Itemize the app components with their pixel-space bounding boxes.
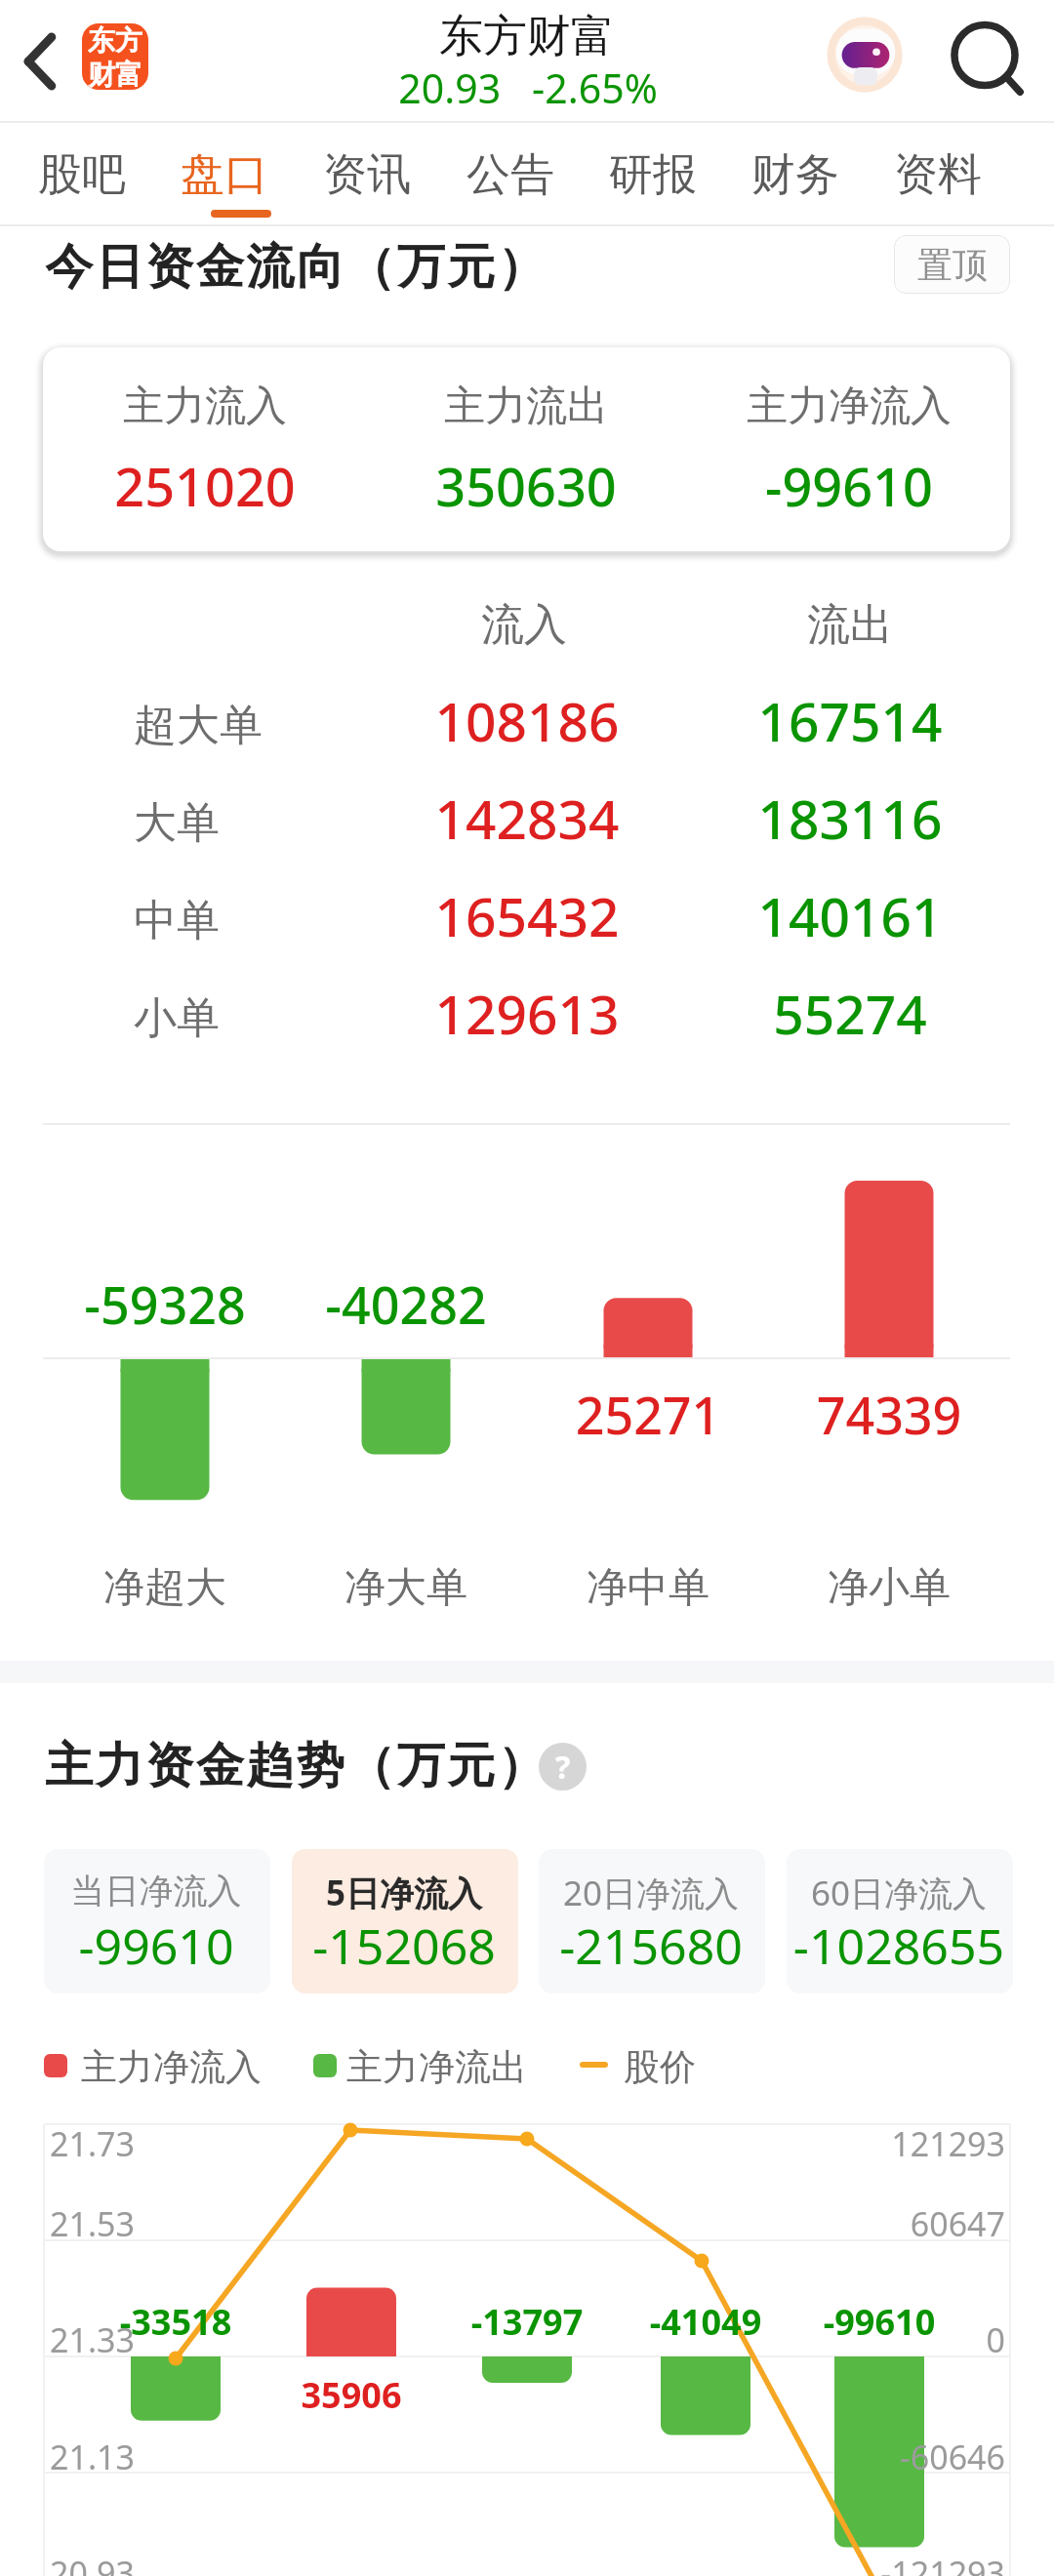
staticText: 今日资金流向（万元） [44,237,547,298]
button[interactable] [44,1849,270,1993]
staticText: 主力净流出 [346,2044,527,2090]
staticText: 流入 [270,598,778,652]
staticText: 研报 [582,147,724,203]
staticText: 主力资金趋势（万元） [44,1736,547,1796]
staticText: 121293 [712,2121,1005,2166]
staticText: 60日净流入 [782,1870,1016,1916]
staticText: 20.93 [50,2551,135,2576]
button[interactable] [43,347,1010,551]
staticText: 公告 [439,147,582,203]
staticText: 20.93 -2.65% [235,60,821,115]
staticText: ? [555,1746,571,1789]
staticText: -215680 [534,1912,768,1979]
staticText: -33518 [0,2298,429,2346]
staticText: 大单 [134,796,220,850]
staticText: -99610 [595,450,1054,522]
button[interactable]: 股吧 [27,122,170,223]
staticText: 183116 [596,782,1054,855]
staticText: 21.33 [50,2317,135,2362]
staticText: 流出 [596,598,1054,652]
staticText: 主力净流入 [595,381,1054,432]
staticText: 东方 [88,23,142,58]
staticText: 超大单 [134,699,263,752]
button[interactable]: Help [539,1743,587,1791]
staticText: 财富 [88,58,142,90]
staticText: -1028655 [782,1912,1016,1979]
button[interactable]: 研报 [598,122,741,223]
button[interactable] [539,1849,765,1993]
staticText: 35906 [98,2371,605,2419]
staticText: -41049 [452,2298,959,2346]
button[interactable]: 财务 [741,122,883,223]
staticText: 主力净流入 [81,2044,262,2090]
staticText: 小单 [134,991,220,1045]
staticText: 74339 [635,1380,1054,1449]
staticText: 净超大 [0,1562,419,1614]
button[interactable]: 资料 [883,122,1026,223]
staticText: 21.53 [50,2201,135,2246]
staticText: 25271 [394,1380,902,1449]
staticText: -121293 [712,2551,1005,2576]
button[interactable]: 盘口 [170,122,312,223]
staticText: 财务 [724,147,867,203]
staticText: -99610 [39,1912,273,1979]
staticText: -152068 [287,1912,521,1979]
button[interactable]: Search [939,11,1031,102]
staticText: 置顶 [917,243,988,287]
button[interactable]: 公告 [456,122,598,223]
button[interactable]: Back [0,0,82,122]
staticText: 盘口 [153,147,296,203]
staticText: 55274 [596,977,1054,1050]
staticText: 当日净流入 [39,1870,273,1912]
staticText: 股吧 [11,147,153,203]
staticText: 净大单 [152,1562,660,1614]
button[interactable] [787,1849,1013,1993]
button[interactable]: 置顶 [894,235,1010,294]
staticText: 60647 [712,2201,1005,2246]
staticText: 净小单 [635,1562,1054,1614]
staticText: 资料 [867,147,1009,203]
staticText: 东方财富 [234,9,820,64]
staticText: 142834 [273,782,781,855]
staticText: 350630 [272,450,780,522]
staticText: -40282 [152,1269,660,1339]
button[interactable]: East Money [82,23,148,90]
staticText: 165432 [273,879,781,952]
staticText: 净中单 [394,1562,902,1614]
staticText: 21.13 [50,2435,135,2479]
staticText: 251020 [0,450,459,522]
staticText: 股价 [624,2044,696,2090]
staticText: 140161 [596,879,1054,952]
staticText: -99610 [626,2298,1054,2346]
staticText: 129613 [273,977,781,1050]
staticText: 中单 [134,894,220,947]
staticText: -60646 [712,2435,1005,2479]
button[interactable] [292,1849,518,1993]
button[interactable]: 资讯 [312,122,455,223]
button[interactable]: AI assistant [821,10,911,100]
staticText: 主力流出 [272,381,780,432]
staticText: 0 [712,2317,1005,2362]
staticText: 21.73 [50,2121,135,2166]
staticText: -59328 [0,1269,419,1339]
staticText: 167514 [596,684,1054,757]
staticText: 20日净流入 [534,1870,768,1916]
staticText: 108186 [273,684,781,757]
staticText: 资讯 [296,147,438,203]
staticText: 5日净流入 [287,1870,521,1916]
staticText: -13797 [273,2298,781,2346]
staticText: 主力流入 [0,381,459,432]
